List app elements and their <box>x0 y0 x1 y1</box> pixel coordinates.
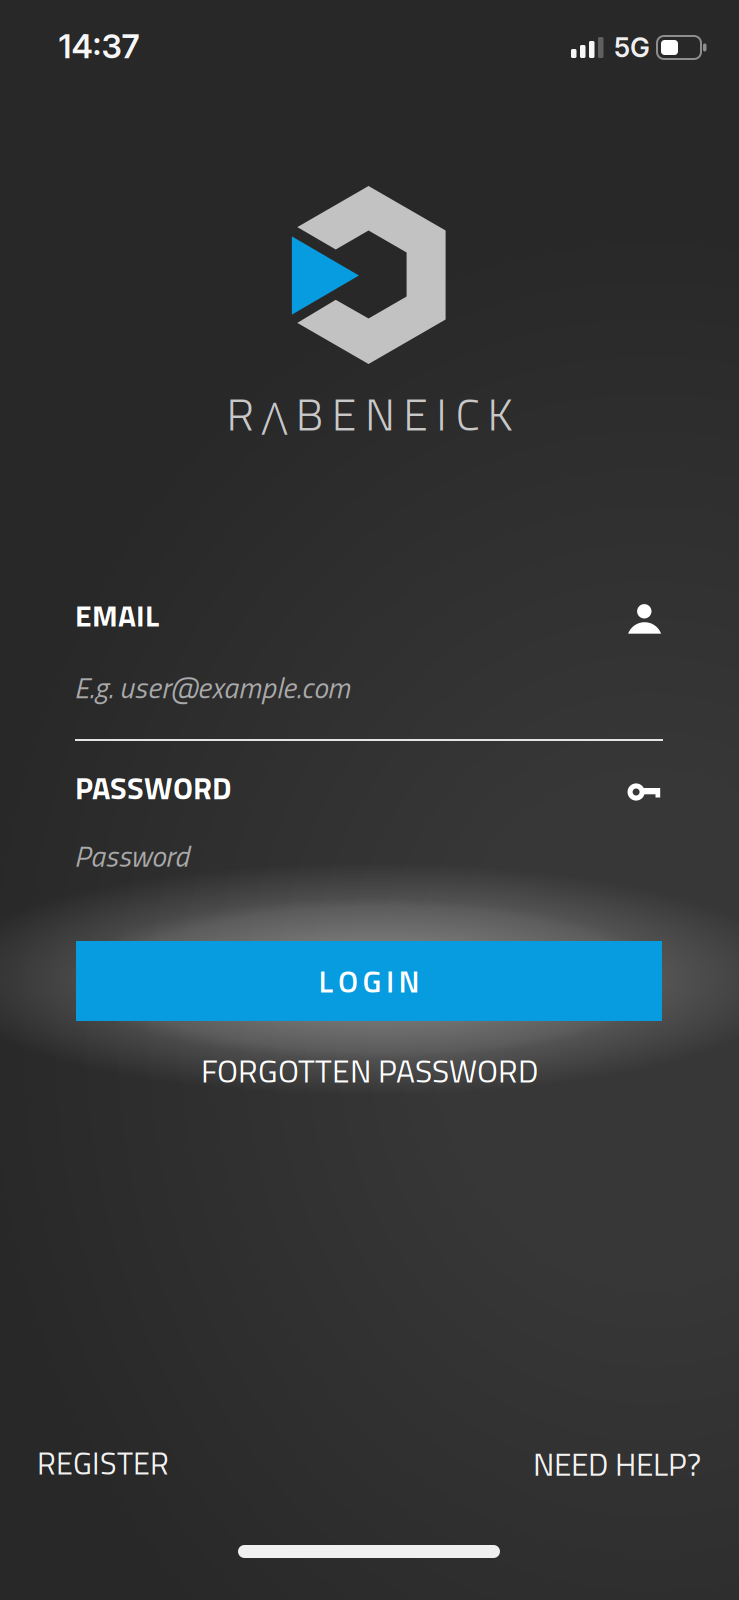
staticText: R <box>226 380 253 448</box>
staticText: FORGOTTEN PASSWORD <box>201 1046 538 1095</box>
staticText: N <box>398 958 419 1004</box>
staticText: 5G <box>614 31 650 64</box>
staticText: N <box>365 380 395 448</box>
button[interactable]: REGISTER <box>37 1440 169 1486</box>
button[interactable]: NEED HELP? <box>533 1440 701 1488</box>
staticText: K <box>488 380 513 448</box>
button[interactable]: L <box>76 941 662 1021</box>
staticText: C <box>455 380 479 448</box>
button[interactable]: FORGOTTEN PASSWORD <box>0 1046 739 1095</box>
staticText: G <box>362 958 381 1004</box>
staticText: NEED HELP? <box>533 1440 701 1488</box>
staticText: I <box>386 958 394 1004</box>
staticText: EMAIL <box>75 592 159 638</box>
staticText: I <box>436 380 447 448</box>
staticText: O <box>338 958 358 1004</box>
staticText: E.g. user@example.com <box>74 665 350 710</box>
staticText: Password <box>74 833 189 878</box>
staticText: L <box>318 958 333 1004</box>
staticText: REGISTER <box>37 1440 169 1486</box>
staticText: Λ <box>262 387 288 448</box>
staticText: E <box>403 380 428 448</box>
staticText: E <box>332 380 357 448</box>
staticText: PASSWORD <box>75 764 232 811</box>
staticText: B <box>296 380 324 448</box>
staticText: 14:37 <box>58 26 139 66</box>
